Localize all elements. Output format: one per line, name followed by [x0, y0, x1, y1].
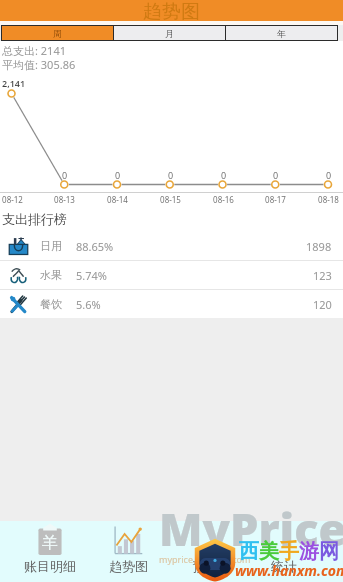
- staticText: 总支出: 2141: [2, 43, 66, 58]
- button[interactable]: 羊: [11, 521, 89, 582]
- button[interactable]: 餐饮: [0, 290, 343, 318]
- staticText: 统计: [271, 558, 297, 574]
- staticText: 08-14: [107, 194, 128, 205]
- staticText: 游: [299, 539, 319, 564]
- staticText: 手: [279, 539, 299, 564]
- staticText: 5.6%: [76, 297, 101, 312]
- staticText: 08-17: [265, 194, 286, 205]
- staticText: 2,141: [2, 77, 26, 89]
- staticText: 西: [239, 539, 259, 564]
- staticText: 平均值: 305.86: [2, 57, 76, 72]
- staticText: 08-15: [160, 194, 181, 205]
- staticText: 网: [319, 539, 339, 564]
- staticText: MyPrice: [159, 498, 343, 559]
- button[interactable]: 月: [114, 26, 225, 40]
- staticText: www.hanxm.com: [235, 561, 343, 580]
- staticText: 1898: [306, 239, 332, 254]
- staticText: 日用: [40, 239, 62, 253]
- staticText: 美: [259, 539, 279, 564]
- staticText: 周: [53, 28, 62, 39]
- staticText: 趋势图: [143, 0, 200, 21]
- staticText: 预算: [193, 558, 219, 574]
- staticText: 0: [168, 169, 174, 181]
- staticText: 年: [277, 28, 286, 39]
- button[interactable]: 水果: [0, 261, 343, 289]
- button[interactable]: 年: [226, 26, 337, 40]
- button[interactable]: 趋势图: [89, 521, 167, 582]
- button[interactable]: 预算: [167, 521, 245, 582]
- staticText: 08-16: [213, 194, 234, 205]
- staticText: 0: [326, 169, 332, 181]
- staticText: 餐饮: [40, 297, 62, 311]
- staticText: 0: [221, 169, 227, 181]
- staticText: 0: [273, 169, 279, 181]
- staticText: 08-12: [2, 194, 23, 205]
- staticText: myprice.mumayi.com: [159, 553, 251, 565]
- button[interactable]: 周: [2, 26, 113, 40]
- staticText: 123: [313, 268, 332, 283]
- button[interactable]: 日用: [0, 232, 343, 260]
- staticText: 趋势图: [109, 558, 148, 574]
- staticText: 羊: [42, 533, 58, 553]
- staticText: 08-18: [318, 194, 339, 205]
- staticText: 88.65%: [76, 239, 114, 254]
- staticText: 账目明细: [24, 558, 76, 574]
- staticText: 支出排行榜: [2, 211, 67, 227]
- staticText: 5.74%: [76, 268, 107, 283]
- staticText: 水果: [40, 268, 62, 282]
- staticText: 0: [115, 169, 121, 181]
- button[interactable]: 统计: [245, 521, 323, 582]
- staticText: 0: [62, 169, 68, 181]
- staticText: 08-13: [54, 194, 75, 205]
- staticText: 120: [313, 297, 332, 312]
- staticText: 月: [165, 28, 174, 39]
